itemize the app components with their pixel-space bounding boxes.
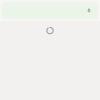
button[interactable] — [0, 0, 100, 21]
